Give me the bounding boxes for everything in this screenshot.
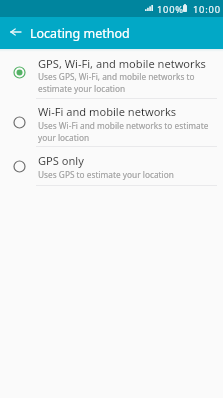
staticText: Locating method: [30, 25, 130, 42]
staticText: GPS only: [38, 153, 84, 168]
button[interactable]: Navigate up: [3, 19, 29, 45]
staticText: Wi-Fi and mobile networks: [38, 104, 177, 119]
button[interactable]: GPS only: [0, 147, 223, 186]
staticText: 100%: [157, 3, 184, 16]
staticText: Uses GPS to estimate your location: [38, 169, 218, 180]
button[interactable]: GPS, Wi-Fi, and mobile networks: [0, 49, 223, 99]
button[interactable]: Wi-Fi and mobile networks: [0, 99, 223, 147]
staticText: Uses GPS, Wi-Fi, and mobile networks to …: [38, 71, 218, 94]
staticText: Uses Wi-Fi and mobile networks to estima…: [38, 120, 218, 143]
staticText: GPS, Wi-Fi, and mobile networks: [38, 56, 206, 71]
staticText: 10:00: [193, 3, 221, 16]
